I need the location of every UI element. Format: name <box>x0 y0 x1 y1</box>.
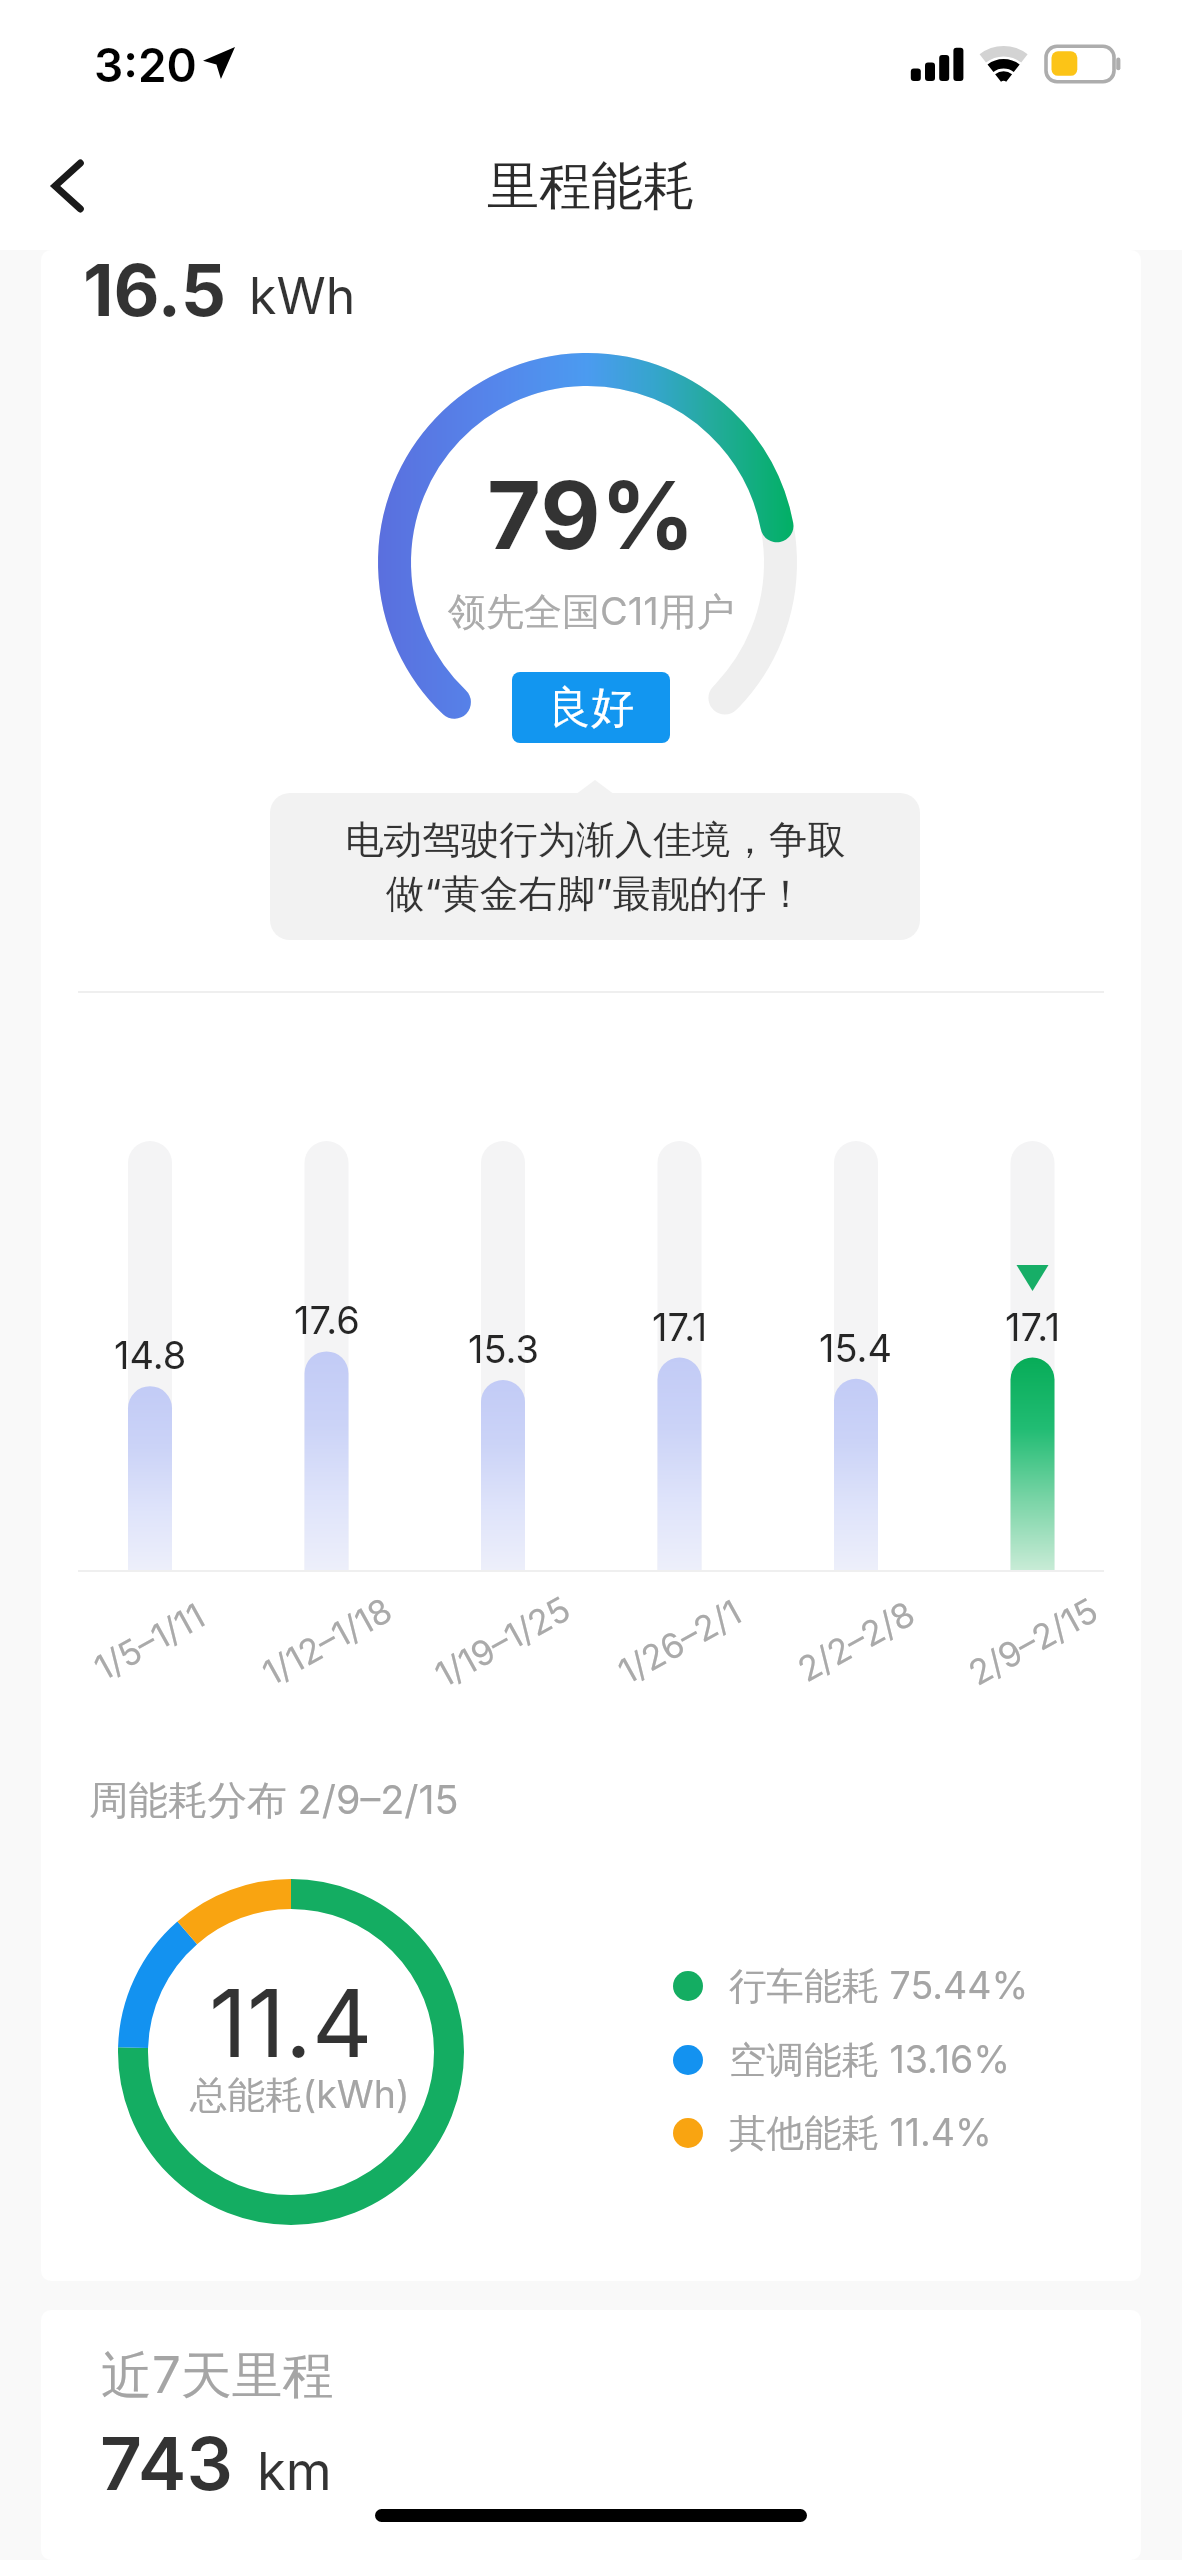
staticText: 2/9–2/15 <box>962 1589 1105 1694</box>
staticText: 11.4 <box>209 1966 373 2079</box>
staticText: 1/19–1/25 <box>428 1588 578 1696</box>
staticText: 79% <box>487 459 696 572</box>
staticText: 17.1 <box>1005 1304 1061 1350</box>
staticText: 空调能耗 13.16% <box>729 2037 1011 2084</box>
staticText: 良好 <box>548 681 634 735</box>
button[interactable]: 良好 <box>512 672 670 743</box>
staticText: 其他能耗 11.4% <box>729 2110 992 2157</box>
staticText: kWh <box>249 266 356 326</box>
button[interactable]: 其他能耗 11.4% <box>673 2102 992 2164</box>
staticText: 1/5–1/11 <box>87 1594 213 1689</box>
staticText: 1/12–1/18 <box>256 1589 399 1694</box>
staticText: 电动驾驶行为渐入佳境，争取 做“黄金右脚”最靓的仔！ <box>345 816 846 918</box>
staticText: 17.1 <box>652 1304 708 1350</box>
staticText: 17.6 <box>294 1297 360 1343</box>
staticText: 1/26–2/1 <box>611 1591 749 1693</box>
staticText: 领先全国C11用户 <box>448 588 735 636</box>
staticText: 3:20 <box>94 37 197 93</box>
staticText: 近7天里程 <box>101 2344 334 2409</box>
staticText: 总能耗(kWh) <box>190 2072 410 2119</box>
staticText: 周能耗分布 2/9–2/15 <box>89 1776 459 1826</box>
staticText: 2/2–2/8 <box>791 1593 922 1691</box>
button[interactable]: 空调能耗 13.16% <box>673 2029 1011 2091</box>
staticText: km <box>257 2439 332 2503</box>
button[interactable]: Back <box>18 136 118 236</box>
staticText: 行车能耗 75.44% <box>729 1963 1029 2010</box>
staticText: 743 <box>100 2419 233 2507</box>
staticText: 16.5 <box>83 247 227 333</box>
staticText: 里程能耗 <box>487 154 695 220</box>
button[interactable]: 行车能耗 75.44% <box>673 1955 1029 2017</box>
staticText: 15.4 <box>819 1325 893 1371</box>
staticText: 14.8 <box>114 1332 187 1378</box>
staticText: 15.3 <box>468 1326 539 1372</box>
